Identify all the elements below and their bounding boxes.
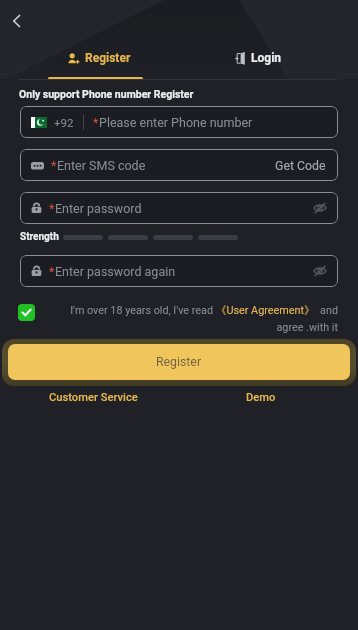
button[interactable]: * bbox=[20, 149, 338, 181]
staticText: +92 bbox=[54, 116, 74, 129]
button[interactable]: I am over 18 years old bbox=[18, 304, 35, 321]
button[interactable]: Login bbox=[179, 47, 338, 80]
button[interactable]: Show password bbox=[309, 260, 331, 282]
button[interactable]: +92 bbox=[20, 106, 338, 138]
staticText: Enter password bbox=[55, 201, 142, 216]
button[interactable]: * bbox=[20, 192, 338, 224]
staticText: Register bbox=[85, 51, 131, 65]
staticText: * bbox=[93, 115, 99, 130]
staticText: Only support Phone number Register bbox=[19, 88, 194, 100]
button[interactable]: Demo bbox=[246, 389, 276, 405]
button[interactable]: Get Code bbox=[275, 159, 326, 173]
staticText: * bbox=[49, 264, 55, 279]
button[interactable]: Back bbox=[3, 8, 29, 34]
staticText: Customer Service bbox=[49, 391, 138, 404]
button[interactable]: * bbox=[20, 255, 338, 287]
staticText: * bbox=[49, 201, 55, 216]
staticText: Register bbox=[156, 355, 202, 369]
button[interactable]: Register bbox=[8, 344, 350, 380]
staticText: Enter SMS code bbox=[57, 158, 146, 173]
button[interactable]: I'm over 18 years old, I've read 《User A… bbox=[41, 304, 338, 333]
button[interactable]: Customer Service bbox=[49, 389, 138, 405]
staticText: Strength bbox=[20, 231, 59, 243]
staticText: Login bbox=[251, 51, 282, 65]
staticText: Please enter Phone number bbox=[99, 115, 253, 130]
staticText: * bbox=[51, 158, 57, 173]
button[interactable]: Show password bbox=[309, 197, 331, 219]
staticText: Enter password again bbox=[55, 264, 176, 279]
staticText: Demo bbox=[246, 391, 276, 404]
button[interactable]: Register bbox=[20, 47, 179, 80]
